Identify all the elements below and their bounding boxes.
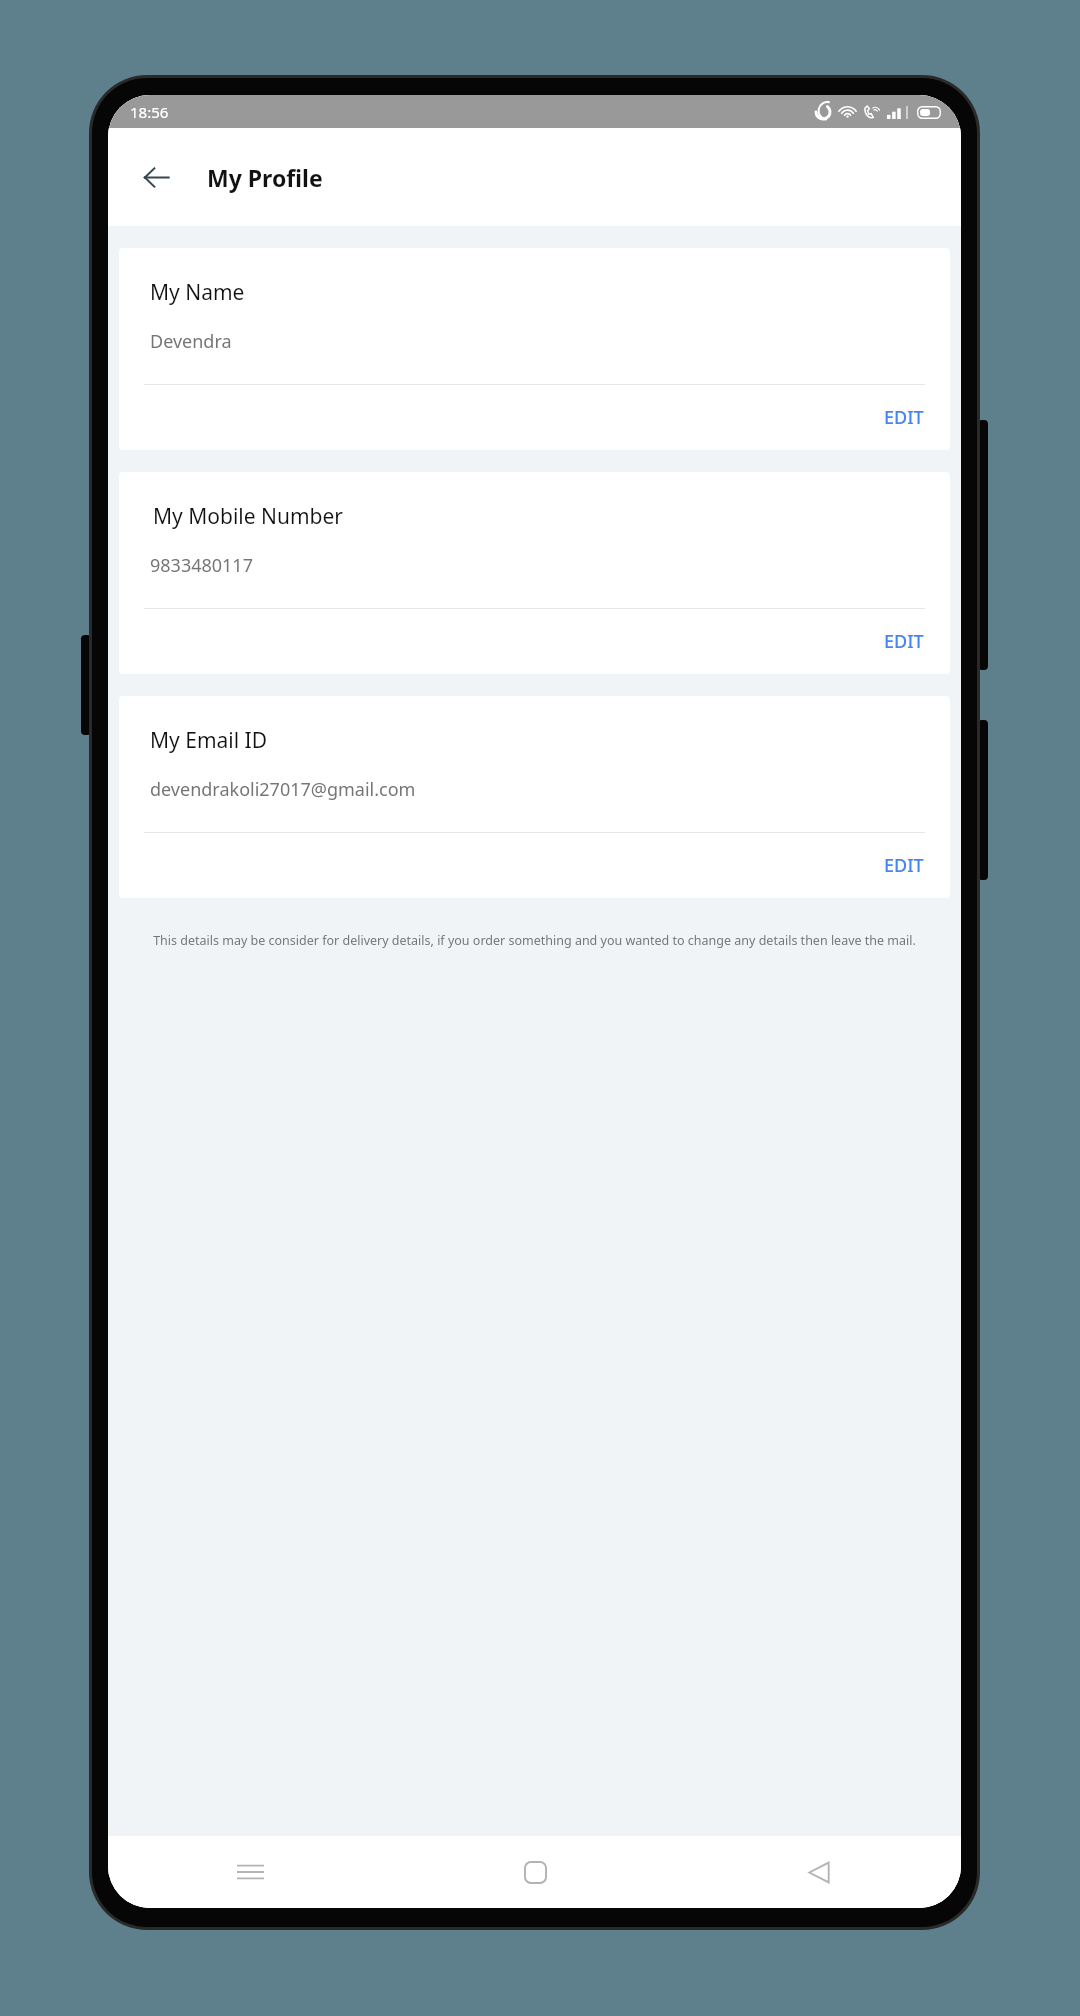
staticText: This details may be consider for deliver… (128, 932, 941, 949)
button[interactable]: Home (393, 1836, 677, 1908)
staticText: EDIT (884, 853, 924, 878)
staticText: devendrakoli27017@gmail.com (150, 777, 416, 802)
staticText: My Profile (207, 162, 323, 193)
staticText: My Email ID (150, 726, 268, 755)
button[interactable]: My Mobile Number (119, 472, 950, 674)
staticText: 9833480117 (150, 553, 253, 578)
button[interactable]: My Email ID (119, 696, 950, 898)
button[interactable]: EDIT (876, 623, 932, 660)
button[interactable]: My Name (119, 248, 950, 450)
button[interactable]: Back (677, 1836, 961, 1908)
button[interactable]: EDIT (876, 847, 932, 884)
staticText: 18:56 (130, 102, 169, 122)
staticText: EDIT (884, 405, 924, 430)
button[interactable]: EDIT (876, 399, 932, 436)
staticText: EDIT (884, 629, 924, 654)
button[interactable]: Back (132, 153, 180, 201)
button[interactable]: Recent apps (108, 1836, 393, 1908)
staticText: Devendra (150, 329, 232, 354)
staticText: My Mobile Number (153, 502, 344, 531)
staticText: My Name (150, 278, 245, 307)
